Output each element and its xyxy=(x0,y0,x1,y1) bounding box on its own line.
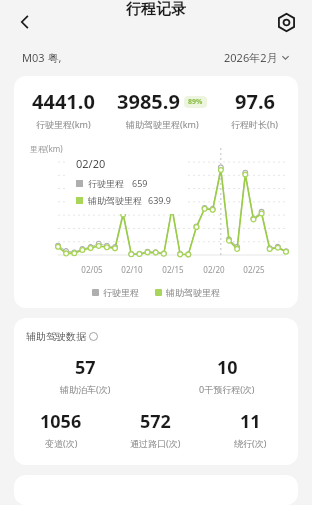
staticText: 89% xyxy=(188,97,203,107)
staticText: 2026年2月 xyxy=(224,50,278,65)
staticText: 02/05 xyxy=(77,264,107,275)
staticText: 4441.0 xyxy=(32,88,95,115)
button[interactable]: 1056 xyxy=(14,409,108,449)
staticText: 辅助驾驶里程 xyxy=(166,287,220,298)
staticText: 行驶里程(km) xyxy=(36,118,91,130)
button[interactable]: 57 xyxy=(14,355,156,395)
staticText: 辅助驾驶里程(km) xyxy=(126,118,199,130)
staticText: 行驶里程 xyxy=(103,287,139,298)
staticText: 02/20 xyxy=(199,264,229,275)
staticText: 02/25 xyxy=(239,264,269,275)
staticText: 3985.9 xyxy=(117,88,180,115)
staticText: 11 xyxy=(240,409,261,434)
button[interactable]: Back xyxy=(6,3,44,41)
button[interactable]: 572 xyxy=(108,409,203,449)
staticText: 辅助泊车(次) xyxy=(60,383,111,395)
staticText: 绕行(次) xyxy=(234,437,267,449)
staticText: 1056 xyxy=(40,409,82,434)
staticText: 通过路口(次) xyxy=(130,437,181,449)
staticText: 97.6 xyxy=(235,88,275,115)
button[interactable]: 11 xyxy=(203,409,298,449)
staticText: 57 xyxy=(75,355,96,380)
staticText: 659 xyxy=(132,177,148,189)
staticText: 639.9 xyxy=(148,194,172,206)
staticText: 02/10 xyxy=(117,264,147,275)
staticText: 行程时长(h) xyxy=(231,118,278,130)
button[interactable]: 10 xyxy=(156,355,298,395)
staticText: 0干预行程(次) xyxy=(199,383,255,395)
staticText: 行程记录 xyxy=(126,0,186,19)
button[interactable]: 2026年2月 xyxy=(224,50,290,65)
staticText: M03 粤, xyxy=(22,50,62,65)
button[interactable]: 行驶里程 xyxy=(92,287,139,298)
staticText: 02/15 xyxy=(158,264,188,275)
staticText: 辅助驾驶里程 xyxy=(88,195,142,206)
staticText: 10 xyxy=(217,355,238,380)
staticText: 辅助驾驶数据 xyxy=(26,330,86,343)
staticText: 行驶里程 xyxy=(88,178,124,189)
button[interactable]: Settings xyxy=(268,4,304,40)
button[interactable]: 辅助驾驶里程 xyxy=(155,287,220,298)
staticText: 里程(km) xyxy=(30,143,63,154)
staticText: 02/20 xyxy=(76,156,106,171)
staticText: 572 xyxy=(140,409,171,434)
staticText: 变道(次) xyxy=(45,437,78,449)
